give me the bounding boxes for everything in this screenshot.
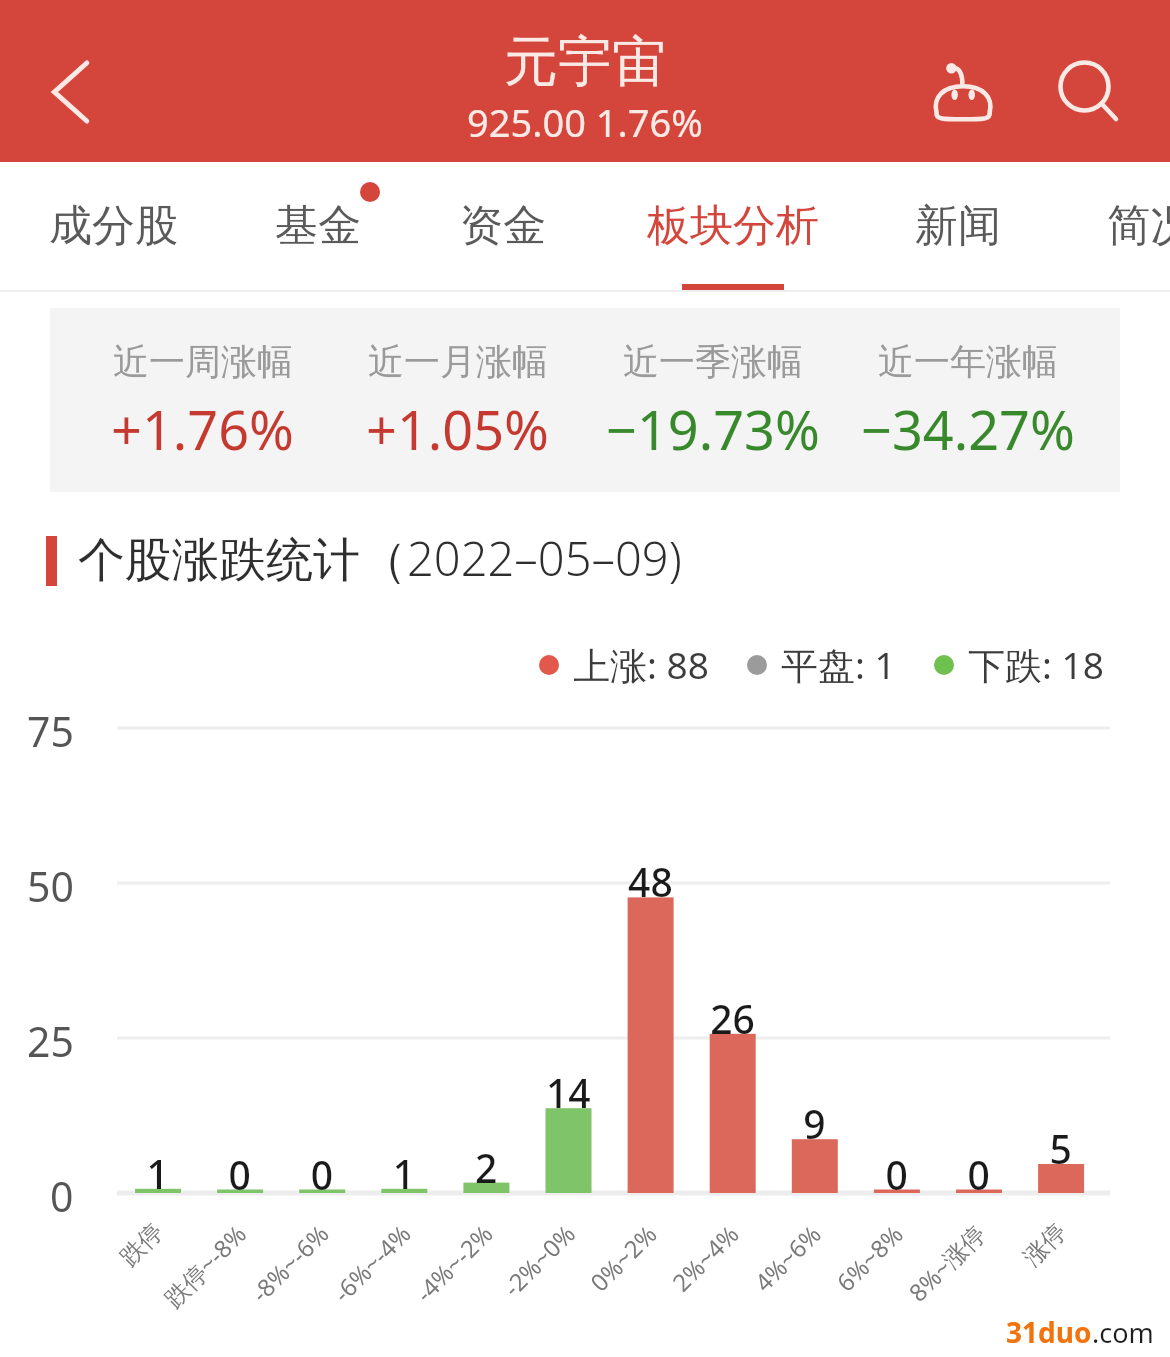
staticText: 下跌: 18 [968,639,1104,690]
staticText: 成分股 [49,199,178,253]
button[interactable]: 平盘: 1 [747,639,896,690]
button[interactable]: 新闻 [876,162,1040,292]
button[interactable]: 板块分析 [610,162,856,292]
button[interactable]: 下跌: 18 [934,639,1104,690]
staticText: 925.00 1.76% [467,96,703,148]
staticText: +1.76% [111,392,294,466]
staticText: 上涨: 88 [573,639,709,690]
button[interactable]: 成分股 [10,162,216,292]
staticText: .com [1092,1314,1154,1351]
staticText: 近一年涨幅 [878,339,1058,384]
staticText: 简况 [1107,199,1170,253]
button[interactable]: 基金 [236,162,400,292]
staticText: +1.05% [366,392,549,466]
button[interactable]: Search [1036,36,1142,148]
staticText: 近一月涨幅 [368,339,548,384]
staticText: 近一周涨幅 [113,339,293,384]
button[interactable]: 上涨: 88 [539,639,709,690]
staticText: −34.27% [861,392,1075,466]
staticText: −19.73% [606,392,820,466]
staticText: 新闻 [915,199,1001,253]
staticText: 31duo [1006,1313,1092,1351]
button[interactable]: AI assistant [910,36,1016,148]
button[interactable]: Back [20,36,120,148]
staticText: 资金 [460,199,546,253]
staticText: 基金 [275,199,361,253]
staticText: 个股涨跌统计（2022–05–09) [78,526,682,590]
button[interactable]: 简况 [1068,162,1170,292]
staticText: 板块分析 [647,199,819,253]
button[interactable]: 资金 [421,162,585,292]
staticText: 近一季涨幅 [623,339,803,384]
staticText: 元宇宙 [504,28,666,96]
staticText: 平盘: 1 [781,639,896,690]
